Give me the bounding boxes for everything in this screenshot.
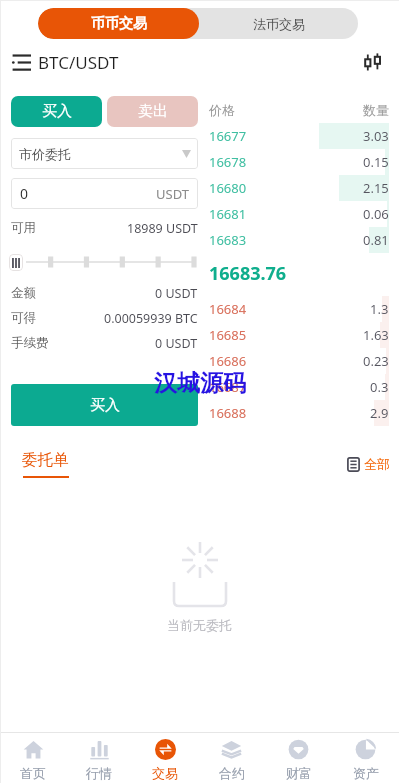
- staticText: 首页: [20, 765, 46, 781]
- staticText: 1.3: [370, 300, 389, 318]
- staticText: 行情: [86, 765, 112, 781]
- staticText: 买入: [42, 102, 72, 121]
- button[interactable]: 16678: [209, 149, 389, 175]
- button[interactable]: Chart: [360, 49, 386, 75]
- staticText: 全部: [364, 456, 390, 472]
- button[interactable]: 16687: [209, 374, 389, 400]
- staticText: 18989 USDT: [127, 220, 198, 237]
- staticText: 财富: [286, 765, 312, 781]
- button[interactable]: Market list: [9, 50, 33, 74]
- button[interactable]: Amount slider: [9, 254, 23, 271]
- staticText: 当前无委托: [167, 617, 232, 633]
- staticText: 价格: [209, 102, 235, 118]
- staticText: 2.15: [363, 179, 389, 197]
- staticText: 委托单: [22, 450, 69, 470]
- button[interactable]: 资产: [332, 733, 399, 783]
- staticText: 0 USDT: [155, 285, 198, 302]
- staticText: 0 USDT: [155, 335, 198, 352]
- staticText: 3.03: [363, 127, 389, 145]
- staticText: 16683.76: [209, 261, 287, 286]
- staticText: 买入: [90, 396, 120, 415]
- button[interactable]: 财富: [265, 733, 332, 783]
- staticText: 交易: [152, 765, 178, 781]
- button[interactable]: 16677: [209, 123, 389, 149]
- staticText: 0.00059939 BTC: [104, 310, 198, 327]
- button[interactable]: 币币交易: [38, 8, 199, 39]
- staticText: 16677: [209, 127, 247, 145]
- staticText: 0.3: [370, 378, 389, 396]
- staticText: 汉城源码: [154, 369, 246, 398]
- staticText: 可用: [11, 220, 36, 236]
- button[interactable]: 首页: [0, 733, 66, 783]
- staticText: 0: [20, 184, 29, 203]
- staticText: 0.23: [363, 352, 389, 370]
- staticText: 可得: [11, 310, 36, 326]
- staticText: 金额: [11, 285, 36, 301]
- staticText: 卖出: [138, 102, 168, 121]
- button[interactable]: 委托单: [22, 450, 69, 478]
- button[interactable]: 买入: [11, 96, 102, 127]
- button[interactable]: 16684: [209, 296, 389, 322]
- staticText: 16686: [209, 352, 247, 370]
- staticText: 币币交易: [91, 15, 147, 33]
- button[interactable]: 16683: [209, 227, 389, 253]
- button[interactable]: 行情: [66, 733, 132, 783]
- button[interactable]: 16686: [209, 348, 389, 374]
- button[interactable]: 交易: [132, 733, 198, 783]
- button[interactable]: 16680: [209, 175, 389, 201]
- staticText: 16681: [209, 205, 247, 223]
- staticText: 16687: [209, 378, 247, 396]
- button[interactable]: 市价委托: [11, 138, 198, 169]
- staticText: 16684: [209, 300, 247, 318]
- staticText: BTC/USDT: [38, 51, 119, 74]
- staticText: 0.15: [363, 153, 389, 171]
- staticText: 法币交易: [253, 16, 305, 32]
- staticText: 16680: [209, 179, 247, 197]
- staticText: 16688: [209, 404, 247, 422]
- button[interactable]: 买入: [11, 384, 198, 426]
- staticText: 16683: [209, 231, 247, 249]
- staticText: 0.81: [363, 231, 389, 249]
- staticText: USDT: [156, 185, 189, 203]
- staticText: 合约: [219, 765, 245, 781]
- staticText: 0.06: [363, 205, 389, 223]
- staticText: 手续费: [11, 335, 49, 351]
- button[interactable]: 16681: [209, 201, 389, 227]
- staticText: 16685: [209, 326, 247, 344]
- button[interactable]: 16685: [209, 322, 389, 348]
- staticText: 资产: [353, 765, 379, 781]
- button[interactable]: 法币交易: [199, 8, 358, 39]
- button[interactable]: 16688: [209, 400, 389, 426]
- button[interactable]: 0: [11, 178, 198, 209]
- staticText: 1.63: [363, 326, 389, 344]
- button[interactable]: 卖出: [107, 96, 198, 127]
- button[interactable]: 全部: [347, 456, 390, 472]
- staticText: 数量: [363, 102, 389, 118]
- staticText: 2.9: [370, 404, 389, 422]
- staticText: 16678: [209, 153, 247, 171]
- staticText: 市价委托: [19, 146, 71, 162]
- button[interactable]: 合约: [198, 733, 265, 783]
